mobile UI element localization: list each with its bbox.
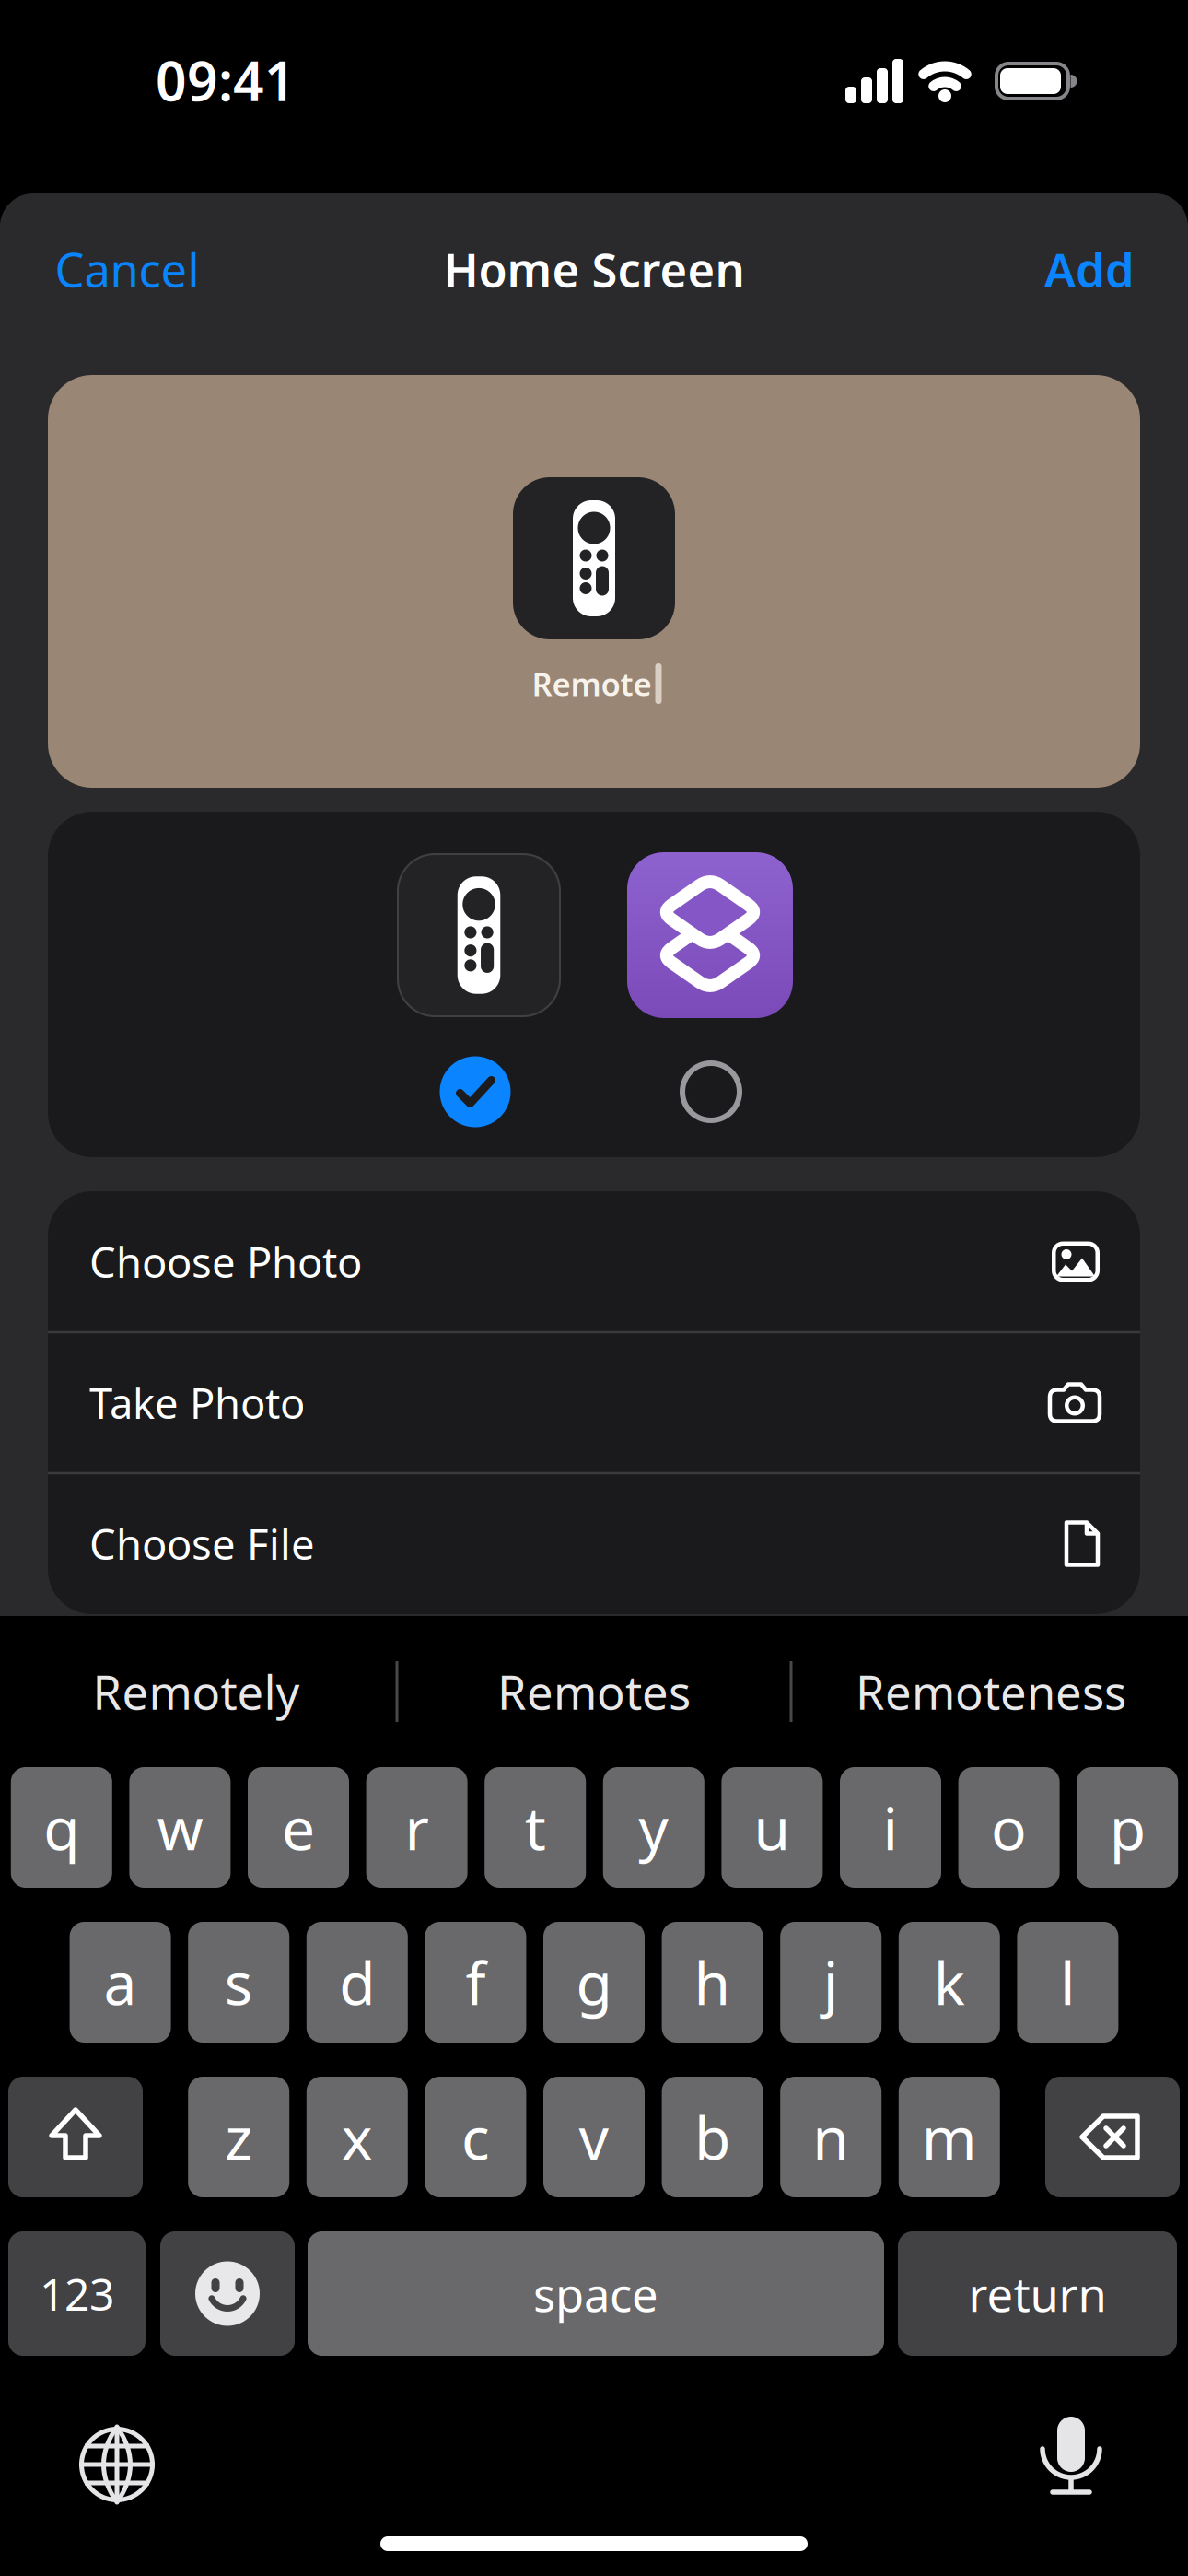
button[interactable]: d — [306, 1922, 408, 2043]
staticText: g — [576, 1943, 612, 2021]
staticText: return — [968, 2263, 1106, 2325]
staticText: Choose File — [89, 1516, 315, 1571]
button[interactable]: Remote icon — [397, 853, 561, 1017]
button[interactable]: s — [188, 1922, 289, 2043]
button[interactable]: t — [485, 1767, 586, 1888]
staticText: n — [812, 2098, 849, 2176]
staticText: h — [694, 1943, 731, 2021]
button[interactable]: o — [958, 1767, 1060, 1888]
button[interactable]: 123 — [8, 2231, 146, 2356]
button[interactable]: g — [543, 1922, 645, 2043]
button[interactable]: w — [129, 1767, 231, 1888]
staticText: l — [1060, 1943, 1076, 2021]
button[interactable]: f — [425, 1922, 526, 2043]
staticText: space — [533, 2263, 658, 2325]
button[interactable]: Unselected icon — [680, 1060, 742, 1123]
staticText: Remotely — [93, 1661, 300, 1723]
button[interactable]: q — [11, 1767, 112, 1888]
button[interactable]: m — [899, 2077, 1000, 2197]
button[interactable]: Remotes — [497, 1661, 691, 1723]
button[interactable]: Selected icon — [440, 1056, 511, 1127]
staticText: r — [405, 1788, 429, 1867]
button[interactable]: Dictate — [1030, 2417, 1112, 2500]
button[interactable]: space — [308, 2231, 884, 2356]
button[interactable]: b — [662, 2077, 763, 2197]
button[interactable]: App icon — [627, 852, 793, 1018]
staticText: Choose Photo — [89, 1234, 362, 1289]
staticText: x — [341, 2098, 373, 2176]
button[interactable]: l — [1017, 1922, 1118, 2043]
staticText: e — [282, 1788, 315, 1867]
button[interactable]: r — [366, 1767, 467, 1888]
staticText: k — [934, 1943, 965, 2021]
staticText: u — [754, 1788, 791, 1867]
staticText: b — [694, 2098, 730, 2176]
staticText: Add — [1044, 238, 1135, 300]
staticText: Remoteness — [856, 1661, 1126, 1723]
staticText: f — [465, 1943, 486, 2021]
staticText: Remote — [532, 662, 652, 705]
button[interactable]: Remotely — [93, 1661, 300, 1723]
staticText: v — [579, 2098, 609, 2176]
staticText: q — [44, 1788, 79, 1867]
staticText: m — [922, 2098, 977, 2176]
staticText: 09:41 — [156, 44, 296, 116]
staticText: a — [104, 1943, 137, 2021]
staticText: w — [157, 1788, 203, 1867]
button[interactable]: x — [306, 2077, 408, 2197]
staticText: Cancel — [55, 238, 199, 300]
button[interactable]: h — [662, 1922, 763, 2043]
staticText: s — [224, 1943, 253, 2021]
button[interactable]: Choose Photo — [48, 1191, 1140, 1332]
staticText: Home Screen — [443, 238, 745, 300]
button[interactable]: e — [248, 1767, 349, 1888]
button[interactable]: Next keyboard — [79, 2427, 155, 2502]
button[interactable]: a — [70, 1922, 171, 2043]
staticText: o — [991, 1788, 1027, 1867]
button[interactable]: u — [721, 1767, 823, 1888]
button[interactable]: p — [1077, 1767, 1178, 1888]
staticText: j — [823, 1943, 839, 2021]
button[interactable]: Take Photo — [48, 1332, 1140, 1473]
button[interactable]: Add — [1044, 238, 1135, 300]
staticText: 123 — [40, 2264, 114, 2323]
staticText: Take Photo — [89, 1375, 305, 1430]
button[interactable]: i — [840, 1767, 941, 1888]
button[interactable]: k — [899, 1922, 1000, 2043]
staticText: c — [461, 2098, 490, 2176]
button[interactable]: Shift — [8, 2077, 143, 2197]
staticText: y — [638, 1788, 669, 1867]
button[interactable]: j — [780, 1922, 882, 2043]
button[interactable]: return — [898, 2231, 1177, 2356]
button[interactable]: Choose File — [48, 1473, 1140, 1614]
staticText: p — [1109, 1788, 1145, 1867]
button[interactable]: Cancel — [55, 238, 199, 300]
staticText: d — [339, 1943, 375, 2021]
button[interactable]: n — [780, 2077, 882, 2197]
button[interactable]: z — [188, 2077, 289, 2197]
button[interactable]: v — [543, 2077, 645, 2197]
button[interactable]: Remoteness — [856, 1661, 1126, 1723]
button[interactable]: y — [603, 1767, 704, 1888]
button[interactable]: Emoji — [160, 2231, 295, 2356]
button[interactable]: c — [425, 2077, 526, 2197]
staticText: z — [225, 2098, 253, 2176]
staticText: i — [883, 1788, 898, 1867]
staticText: t — [525, 1788, 546, 1867]
staticText: Remotes — [497, 1661, 691, 1723]
button[interactable]: Delete — [1045, 2077, 1180, 2197]
